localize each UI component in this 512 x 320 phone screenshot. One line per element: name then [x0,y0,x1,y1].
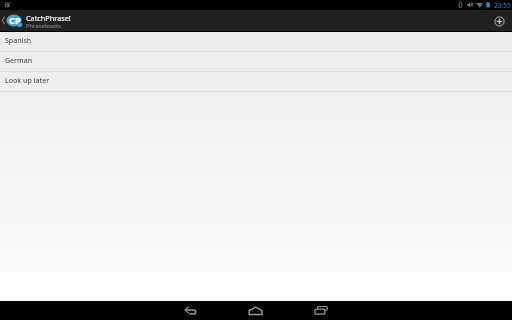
staticText: Spanish [5,36,32,46]
button[interactable]: Recent apps [303,301,339,320]
staticText: German [5,56,33,66]
button[interactable]: German [0,52,512,72]
button[interactable]: Look up later [0,72,512,92]
button[interactable]: Spanish [0,32,512,52]
button[interactable]: Add phrasebook [486,10,512,31]
staticText: Look up later [5,76,50,86]
staticText: 23:55 [494,1,511,10]
staticText: CatchPhrase! [26,13,71,23]
button[interactable]: Navigate up to CatchPhrase! Phrasebooks [0,10,110,31]
staticText: CP [9,14,21,27]
button[interactable]: Back [173,301,209,320]
button[interactable]: Home [238,301,274,320]
staticText: Phrasebooks [26,22,62,30]
